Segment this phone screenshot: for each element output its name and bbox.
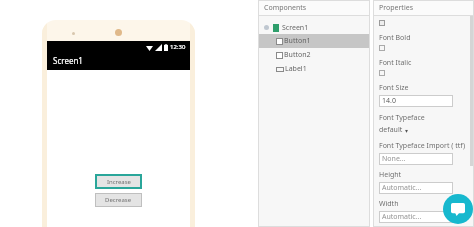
staticText: default bbox=[379, 125, 403, 135]
button[interactable]: Decrease bbox=[95, 193, 142, 207]
staticText: Screen1 bbox=[282, 23, 309, 33]
staticText: Screen1 bbox=[53, 55, 83, 66]
staticText: Font Italic bbox=[379, 58, 412, 68]
button[interactable]: Increase bbox=[95, 174, 142, 189]
button[interactable]: Button1 bbox=[258, 34, 370, 48]
staticText: None... bbox=[382, 154, 406, 164]
button[interactable]: 14.0 bbox=[379, 95, 453, 107]
other: Expand bbox=[264, 25, 269, 30]
button[interactable]: Expand bbox=[258, 21, 370, 34]
button[interactable]: Button2 bbox=[258, 48, 370, 62]
staticText: Button1 bbox=[284, 36, 311, 46]
staticText: ▾ bbox=[405, 127, 409, 134]
staticText: Font Size bbox=[379, 83, 409, 93]
staticText: Button2 bbox=[284, 50, 311, 60]
staticText: Increase bbox=[107, 178, 131, 186]
button[interactable]: default bbox=[379, 125, 409, 135]
staticText: Font Typeface Import ( ttf) bbox=[379, 141, 466, 151]
staticText: Font Bold bbox=[379, 33, 411, 43]
button[interactable]: Automatic... bbox=[379, 182, 453, 194]
button[interactable]: None... bbox=[379, 153, 453, 165]
staticText: Label1 bbox=[285, 64, 307, 74]
staticText: Automatic... bbox=[382, 183, 422, 193]
staticText: 14.0 bbox=[382, 96, 396, 106]
button[interactable]: Label1 bbox=[258, 62, 370, 76]
staticText: 12:30 bbox=[170, 43, 186, 51]
staticText: Font Typeface bbox=[379, 113, 425, 123]
staticText: Height bbox=[379, 170, 402, 180]
staticText: Components bbox=[264, 3, 307, 13]
staticText: Automatic... bbox=[382, 212, 422, 222]
button[interactable]: Open chat bbox=[443, 194, 473, 224]
staticText: Decrease bbox=[105, 196, 132, 204]
button[interactable]: Automatic... bbox=[379, 211, 453, 223]
staticText: Properties bbox=[379, 3, 413, 13]
staticText: Width bbox=[379, 199, 399, 209]
